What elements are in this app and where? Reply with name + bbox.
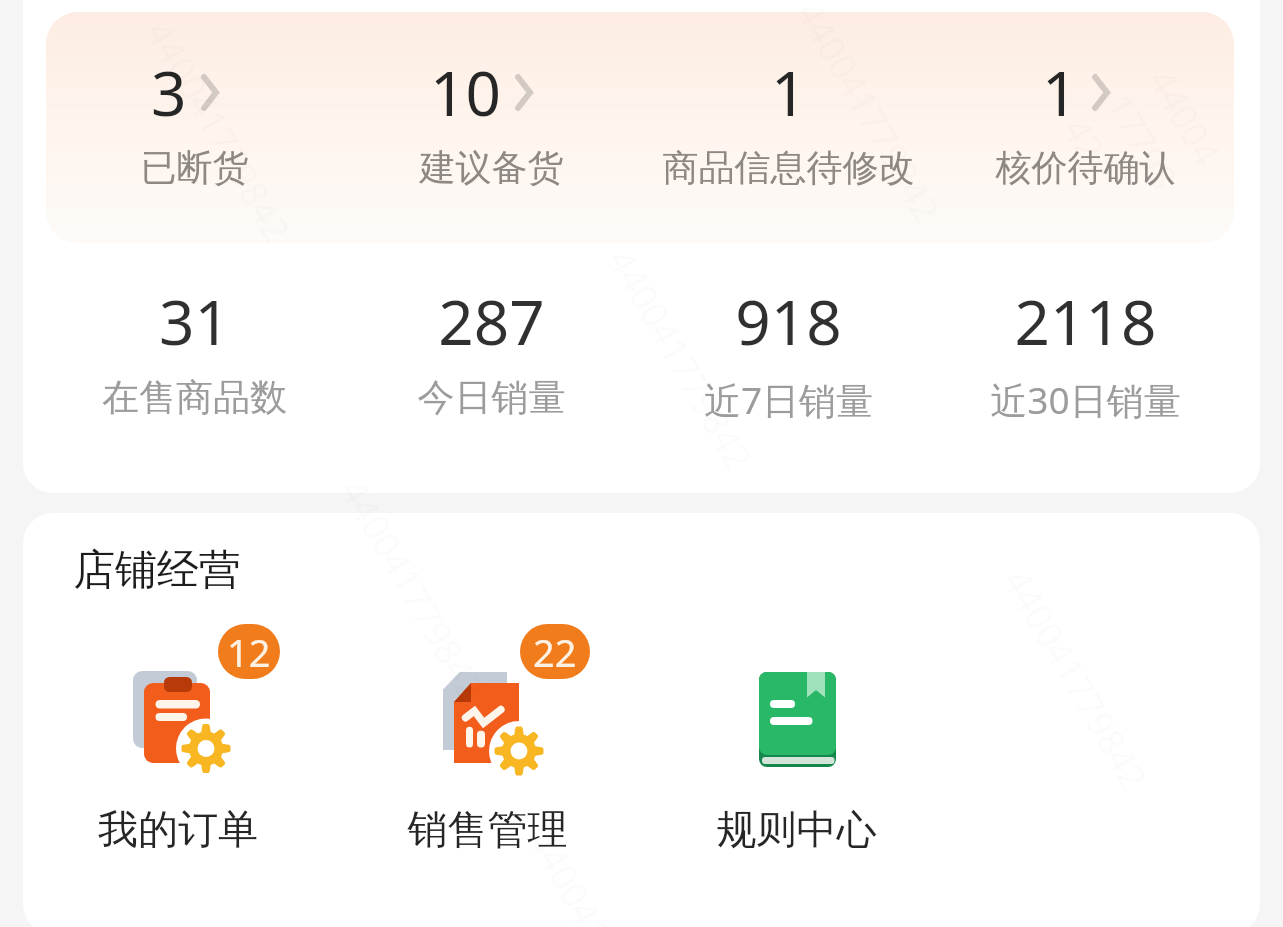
staticText: 近7日销量	[640, 374, 937, 425]
staticText: 商品信息待修改	[640, 145, 937, 190]
staticText: 918	[640, 279, 937, 363]
staticText: 核价待确认	[937, 145, 1234, 190]
staticText: 店铺经营	[73, 544, 241, 597]
staticText: 10	[430, 50, 501, 134]
staticText: 我的订单	[23, 804, 333, 854]
button[interactable]: 10	[343, 12, 640, 243]
button[interactable]: 1	[937, 12, 1234, 243]
staticText: 建议备货	[343, 145, 640, 190]
button[interactable]: 销售管理	[333, 513, 642, 873]
staticText: 近30日销量	[937, 374, 1234, 425]
staticText: 1	[771, 50, 807, 134]
staticText: 12	[227, 626, 271, 678]
staticText: 销售管理	[333, 804, 642, 854]
staticText: 规则中心	[642, 804, 951, 854]
button[interactable]: 我的订单	[23, 513, 333, 873]
button[interactable]: 31	[46, 243, 343, 492]
button[interactable]: 1	[640, 12, 937, 243]
button[interactable]: 287	[343, 243, 640, 492]
staticText: 31	[46, 279, 343, 363]
staticText: 287	[343, 279, 640, 363]
staticText: 3	[151, 50, 187, 134]
button[interactable]: 2118	[937, 243, 1234, 492]
staticText: 已断货	[46, 145, 343, 190]
staticText: 在售商品数	[46, 374, 343, 421]
button[interactable]: 3	[46, 12, 343, 243]
staticText: 22	[533, 626, 577, 678]
button[interactable]: 918	[640, 243, 937, 492]
staticText: 2118	[937, 279, 1234, 363]
staticText: 1	[1042, 50, 1078, 134]
staticText: 今日销量	[343, 374, 640, 421]
button[interactable]: 规则中心	[642, 513, 951, 873]
